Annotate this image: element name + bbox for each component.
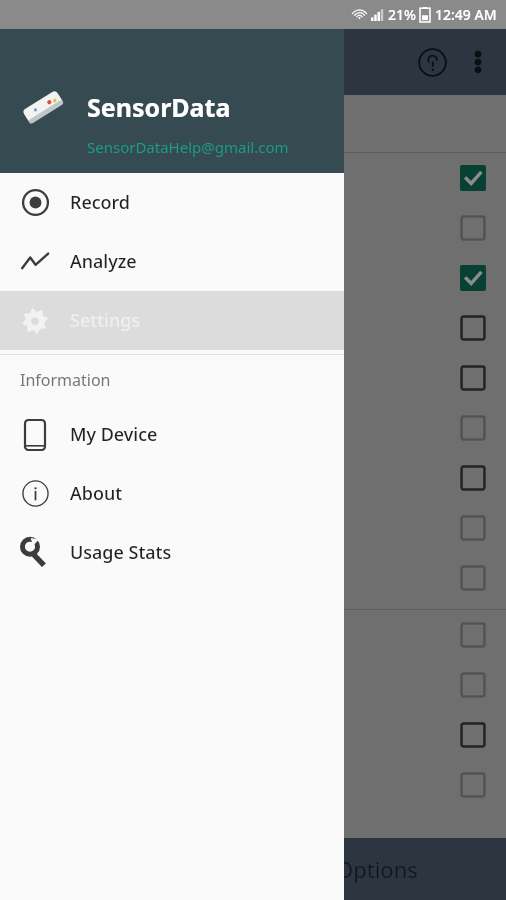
staticText: Settings: [70, 308, 141, 333]
staticText: Information: [20, 369, 111, 391]
button[interactable]: [0, 403, 506, 453]
button[interactable]: About: [0, 464, 344, 523]
button[interactable]: Record: [0, 173, 344, 232]
button[interactable]: My Device: [0, 405, 344, 464]
button[interactable]: [0, 660, 506, 710]
staticText: 21%: [388, 5, 416, 24]
button[interactable]: [0, 303, 506, 353]
staticText: SensorData: [87, 90, 231, 124]
staticText: 12:49 AM: [435, 5, 497, 24]
button[interactable]: [0, 353, 506, 403]
staticText: About: [70, 481, 123, 506]
staticText: My Device: [70, 422, 158, 447]
button[interactable]: [0, 760, 506, 810]
button[interactable]: More options: [456, 40, 500, 84]
button[interactable]: Options: [0, 838, 506, 900]
staticText: Analyze: [70, 249, 137, 274]
button[interactable]: [0, 253, 506, 303]
button[interactable]: [0, 710, 506, 760]
button[interactable]: [0, 153, 506, 203]
button[interactable]: [0, 453, 506, 503]
button[interactable]: Help: [410, 40, 454, 84]
staticText: SensorDataHelp@gmail.com: [87, 137, 289, 157]
button[interactable]: Settings: [0, 291, 344, 350]
staticText: Options: [336, 854, 418, 884]
button[interactable]: [0, 203, 506, 253]
button[interactable]: [0, 610, 506, 660]
button[interactable]: [0, 503, 506, 553]
staticText: Record: [70, 190, 130, 215]
button[interactable]: Analyze: [0, 232, 344, 291]
button[interactable]: [0, 553, 506, 603]
staticText: Usage Stats: [70, 540, 172, 565]
button[interactable]: Usage Stats: [0, 523, 344, 582]
